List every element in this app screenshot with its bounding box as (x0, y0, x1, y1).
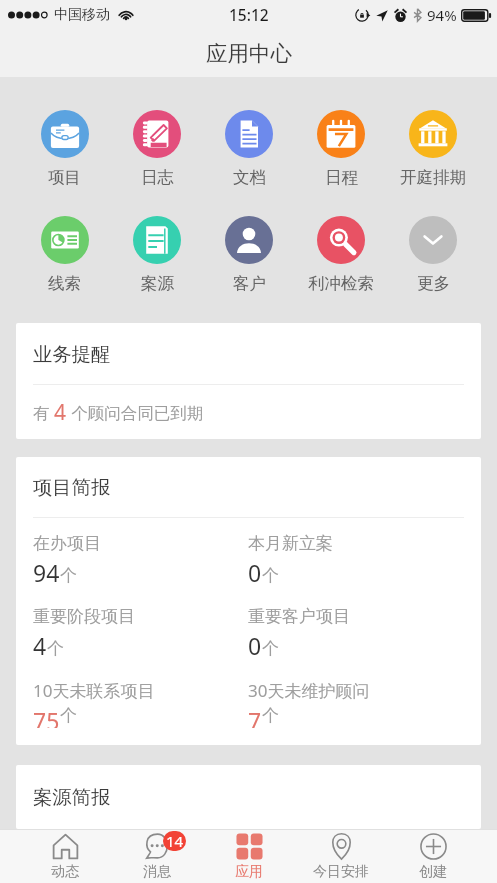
staticText: 14 (166, 831, 184, 851)
staticText: 更多 (417, 273, 450, 294)
staticText: 动态 (51, 863, 79, 881)
staticText: 15:12 (229, 4, 269, 25)
staticText: 4 (54, 398, 67, 427)
button[interactable]: 开庭排期 (387, 110, 479, 190)
staticText: 30天未维护顾问 (248, 679, 370, 702)
staticText: 日程 (325, 167, 358, 188)
staticText: 94 (33, 557, 60, 588)
staticText: 个 (60, 565, 77, 586)
staticText: 个 (262, 705, 279, 726)
button[interactable]: 今日安排 (295, 833, 387, 881)
button[interactable]: 有 (33, 385, 481, 439)
staticText: 0 (248, 557, 262, 588)
button[interactable]: 日志 (111, 110, 203, 190)
staticText: 7 (248, 705, 262, 728)
staticText: 消息 (143, 863, 171, 881)
staticText: 个 (60, 705, 77, 726)
staticText: 案源 (141, 273, 174, 294)
staticText: 重要客户项目 (248, 606, 350, 627)
staticText: 应用 (235, 863, 263, 881)
button[interactable]: 动态 (18, 833, 111, 881)
staticText: 在办项目 (33, 533, 101, 554)
staticText: 个 (47, 638, 64, 659)
button[interactable]: 文档 (203, 110, 295, 190)
button[interactable]: 线索 (18, 216, 111, 296)
staticText: 0 (248, 630, 262, 661)
staticText: 日志 (141, 167, 174, 188)
staticText: 本月新立案 (248, 533, 333, 554)
button[interactable]: 更多 (387, 216, 479, 296)
staticText: 中国移动 (54, 6, 110, 24)
staticText: 个顾问合同已到期 (67, 401, 204, 424)
button[interactable]: 客户 (203, 216, 295, 296)
staticText: 4 (33, 630, 47, 661)
staticText: 重要阶段项目 (33, 606, 135, 627)
staticText: 线索 (48, 273, 81, 294)
button[interactable]: 项目 (18, 110, 111, 190)
button[interactable]: 日程 (295, 110, 387, 190)
staticText: 个 (262, 638, 279, 659)
button[interactable]: 创建 (387, 833, 479, 881)
staticText: 有 (33, 401, 54, 424)
button[interactable]: 应用 (203, 833, 295, 881)
staticText: 个 (262, 565, 279, 586)
staticText: 文档 (233, 167, 266, 188)
staticText: 应用中心 (206, 40, 292, 67)
staticText: 10天未联系项目 (33, 679, 155, 702)
staticText: 今日安排 (313, 863, 369, 881)
staticText: 业务提醒 (33, 342, 111, 366)
staticText: 客户 (233, 273, 266, 294)
staticText: 开庭排期 (400, 167, 466, 188)
staticText: 创建 (419, 863, 447, 881)
staticText: 项目 (48, 167, 81, 188)
staticText: 案源简报 (33, 785, 111, 809)
staticText: 75 (33, 705, 60, 728)
button[interactable]: 利冲检索 (295, 216, 387, 296)
staticText: 94% (427, 5, 457, 25)
button[interactable]: 14 (111, 833, 203, 881)
staticText: 项目简报 (33, 475, 111, 499)
staticText: 利冲检索 (308, 273, 374, 294)
button[interactable]: 案源 (111, 216, 203, 296)
